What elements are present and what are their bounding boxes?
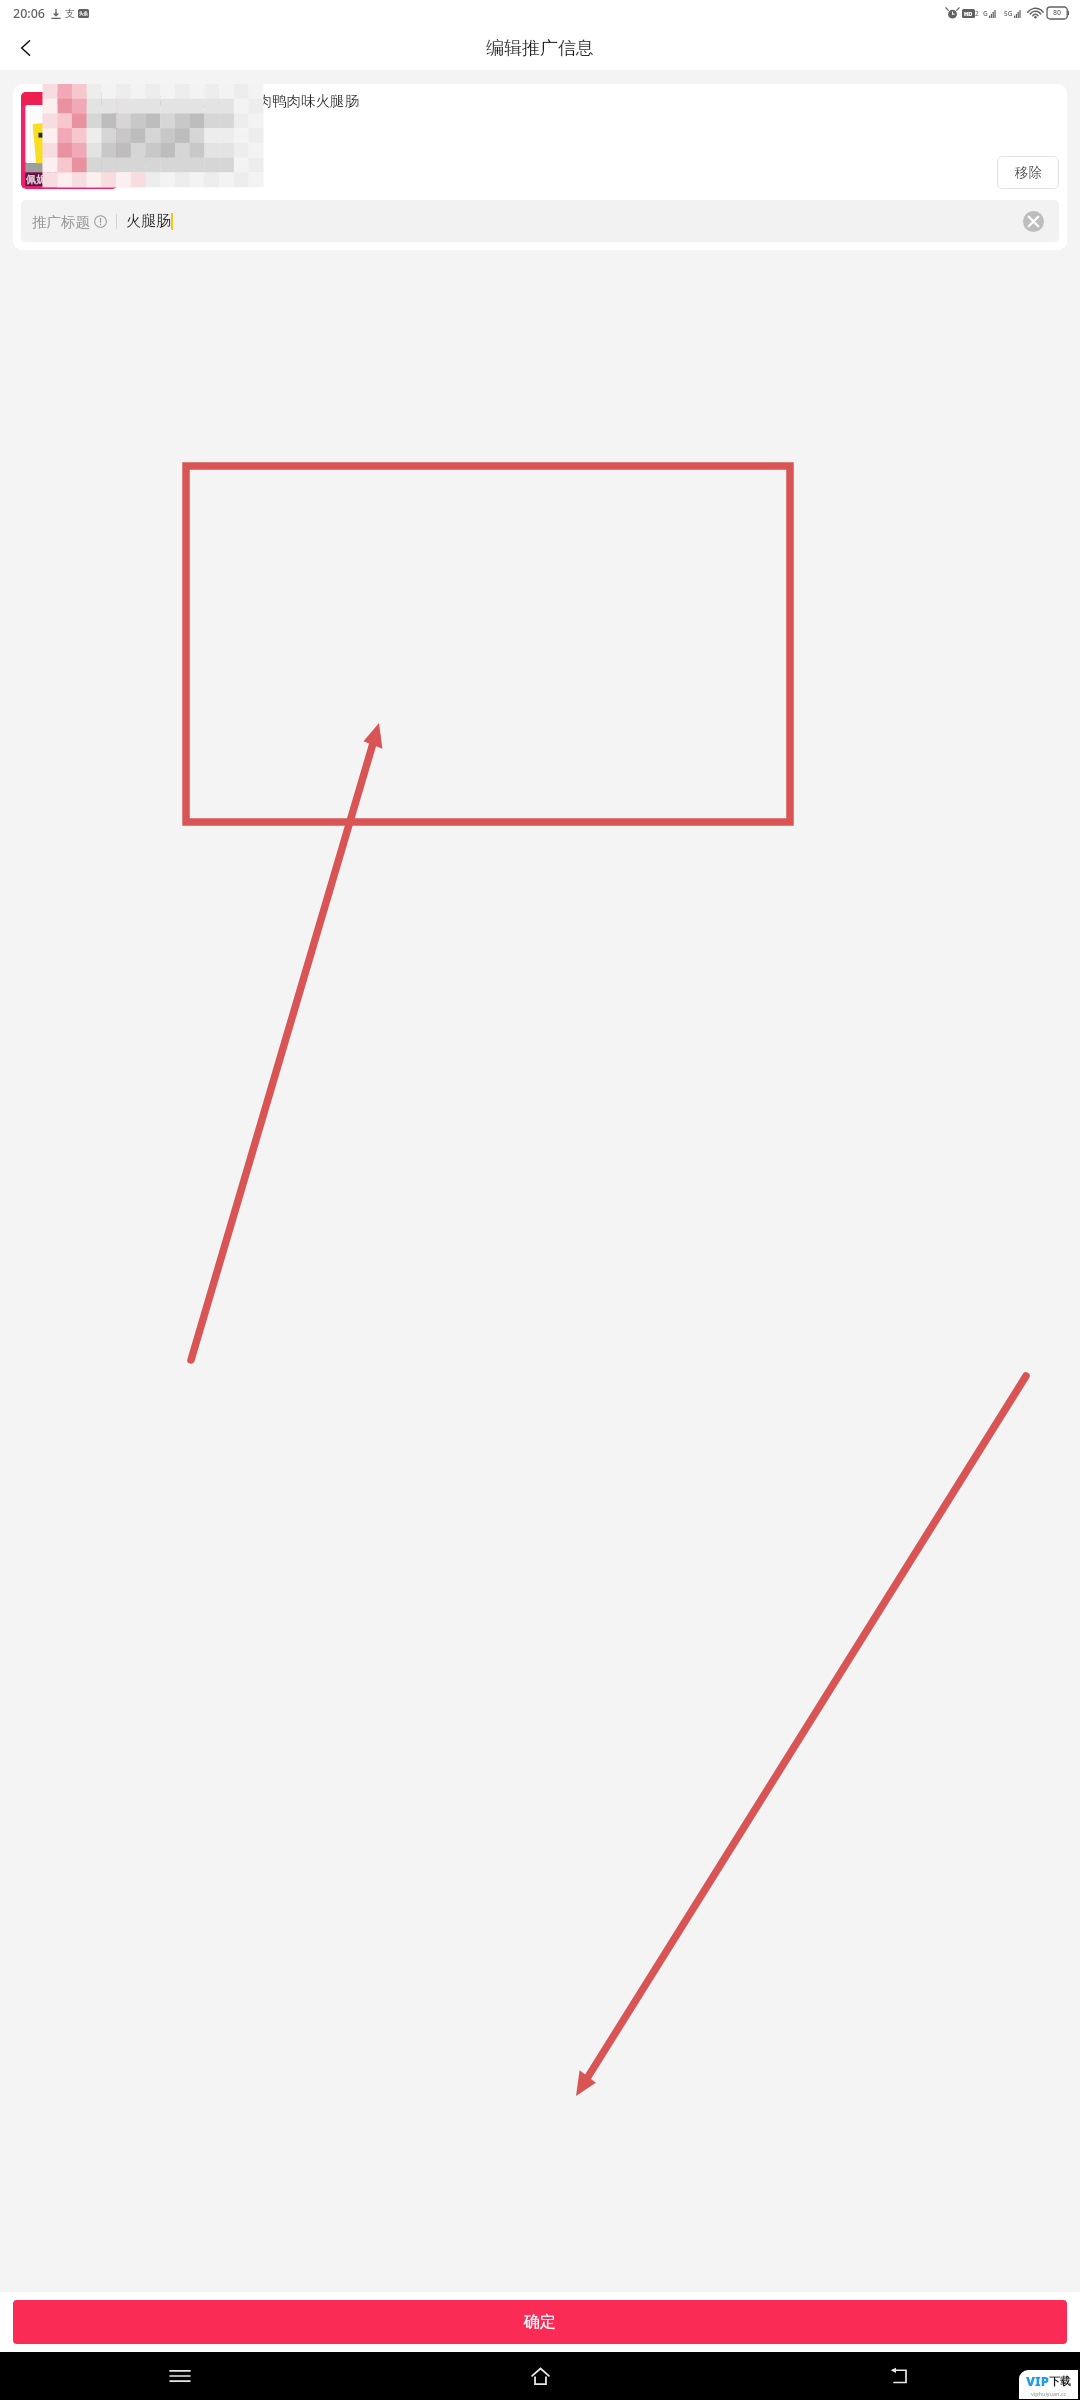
- staticText: ♪: [54, 95, 60, 104]
- staticText: 编辑推广信息: [486, 37, 594, 60]
- button[interactable]: 最近任务: [0, 2352, 360, 2400]
- staticText: 确定: [524, 2312, 556, 2332]
- button[interactable]: 返回: [4, 26, 48, 70]
- staticText: 推广标题: [32, 213, 90, 231]
- button[interactable]: 返回: [720, 2352, 1080, 2400]
- staticText: 编辑封面: [44, 169, 96, 185]
- staticText: 2: [975, 9, 979, 18]
- staticText: 约60根: [77, 170, 95, 178]
- staticText: HD: [964, 10, 973, 17]
- staticText: 售价¥14.9 月售6万: [127, 172, 232, 189]
- staticText: 5G: [1004, 9, 1013, 18]
- staticText: 新努力品牌: [61, 99, 86, 105]
- staticText: VIP: [1026, 2372, 1049, 2390]
- staticText: ¥: [140, 151, 147, 167]
- button[interactable]: 编辑封面: [21, 169, 118, 185]
- staticText: 下载: [1049, 2374, 1071, 2388]
- staticText: 香肠狗狗训练零食鸡肉鸭肉味火腿肠: [127, 92, 997, 110]
- button[interactable]: 确定: [13, 2300, 1067, 2344]
- staticText: viphuiyuan.cc: [1031, 2390, 1067, 2397]
- staticText: 抖音电商: [61, 93, 79, 99]
- staticText: 赚: [127, 153, 138, 167]
- staticText: 3.73: [147, 144, 181, 167]
- staticText: 佩妮: [26, 173, 46, 186]
- staticText: 支: [65, 7, 75, 20]
- button[interactable]: 主页: [360, 2352, 720, 2400]
- staticText: 宠物火腿肠: [68, 178, 103, 187]
- button[interactable]: 移除: [997, 156, 1059, 189]
- button[interactable]: 清除: [1020, 208, 1046, 234]
- staticText: 移除: [1015, 164, 1042, 181]
- button[interactable]: 推广标题: [21, 200, 1059, 242]
- staticText: 火腿肠: [126, 212, 171, 231]
- staticText: 80: [1053, 8, 1062, 18]
- staticText: 20:06: [13, 5, 46, 22]
- staticText: G: [983, 9, 988, 18]
- staticText: 头条: [79, 11, 88, 17]
